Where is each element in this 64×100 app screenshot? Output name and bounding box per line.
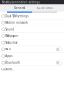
- button[interactable]: Bluetooth: [0, 59, 64, 66]
- button[interactable]: Mobile network: [0, 20, 64, 26]
- staticText: Status bar: [5, 41, 17, 44]
- button[interactable]: ALL SETTINGS: [32, 4, 57, 11]
- staticText: General: [14, 6, 25, 10]
- staticText: Mobile network: [5, 21, 27, 24]
- staticText: Wi-Fi: [5, 48, 11, 51]
- staticText: Sound: [5, 28, 14, 31]
- button[interactable]: General: [7, 4, 32, 11]
- button[interactable]: Wi-Fi: [0, 46, 64, 53]
- staticText: Dual SIM settings: [5, 14, 28, 18]
- button[interactable]: Sound: [0, 26, 64, 33]
- staticText: Apps: [5, 54, 12, 58]
- staticText: Custom...: [1, 67, 14, 71]
- button[interactable]: Dual SIM settings: [0, 13, 64, 20]
- staticText: Bluetooth: [5, 61, 20, 64]
- button[interactable]: Apps: [0, 53, 64, 59]
- staticText: ALL SETTINGS: [36, 6, 52, 10]
- button[interactable]: Wallpaper: [0, 33, 64, 40]
- staticText: Nearby connection settings: [2, 0, 40, 4]
- button[interactable]: Status bar: [0, 39, 64, 46]
- staticText: Wallpaper: [5, 34, 18, 38]
